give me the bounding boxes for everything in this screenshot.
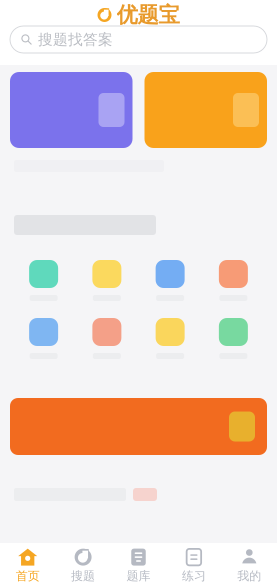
button[interactable] [75, 318, 138, 359]
button[interactable]: 题库 [111, 549, 166, 583]
button[interactable] [10, 72, 132, 148]
staticText: 练习 [182, 569, 206, 583]
button[interactable]: 搜题 [55, 549, 111, 583]
button[interactable]: 首页 [0, 549, 55, 583]
button[interactable] [10, 398, 267, 455]
button[interactable]: 搜题找答案 [10, 26, 267, 53]
staticText: 首页 [16, 569, 40, 583]
button[interactable] [138, 260, 202, 301]
button[interactable] [12, 318, 75, 359]
staticText: 我的 [237, 569, 261, 583]
button[interactable]: 练习 [166, 549, 222, 583]
button[interactable] [138, 318, 202, 359]
button[interactable] [202, 260, 265, 301]
staticText: 优题宝 [116, 2, 179, 28]
button[interactable] [202, 318, 265, 359]
button[interactable]: 我的 [222, 549, 277, 583]
button[interactable] [144, 72, 267, 148]
staticText: 题库 [126, 569, 150, 583]
button[interactable] [75, 260, 138, 301]
button[interactable] [12, 260, 75, 301]
staticText: 搜题 [71, 569, 95, 583]
staticText: 搜题找答案 [38, 30, 113, 48]
